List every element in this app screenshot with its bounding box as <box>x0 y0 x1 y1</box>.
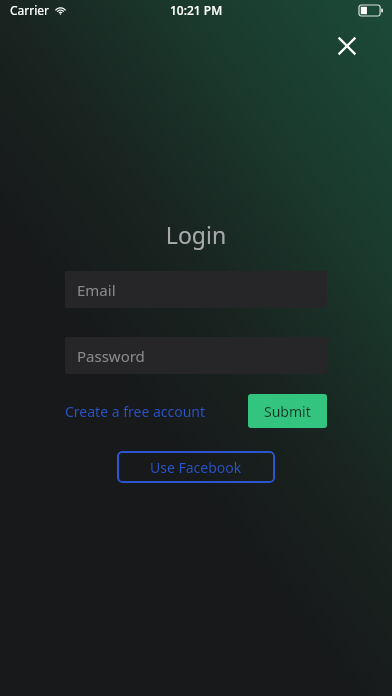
button[interactable]: Use Facebook <box>117 451 275 483</box>
staticText: Submit <box>264 402 311 421</box>
button[interactable]: Password <box>65 337 327 374</box>
staticText: Use Facebook <box>150 458 242 477</box>
staticText: 10:21 PM <box>170 2 223 18</box>
staticText: Password <box>77 346 145 366</box>
button[interactable]: Create a free account <box>65 398 206 425</box>
button[interactable]: Close <box>325 24 369 68</box>
button[interactable]: Email <box>65 271 327 308</box>
staticText: Login <box>0 219 392 250</box>
staticText: Create a free account <box>65 402 206 421</box>
button[interactable]: Submit <box>248 394 327 428</box>
staticText: Email <box>77 280 116 300</box>
staticText: Carrier <box>10 2 50 18</box>
